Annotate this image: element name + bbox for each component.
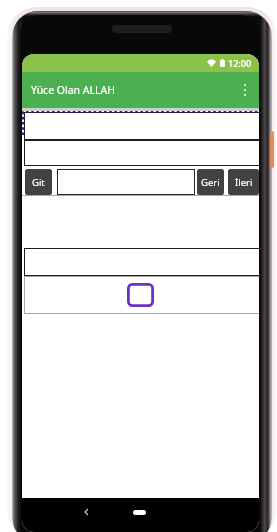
- staticText: Git: [32, 176, 45, 189]
- staticText: İleri: [235, 176, 253, 189]
- button[interactable]: [57, 169, 195, 195]
- button[interactable]: [24, 248, 259, 276]
- button[interactable]: [24, 112, 259, 140]
- button[interactable]: Back: [77, 503, 95, 521]
- staticText: Yüce Olan ALLAH: [31, 83, 116, 97]
- staticText: 12:00: [228, 57, 252, 69]
- button[interactable]: [24, 140, 259, 166]
- button[interactable]: Home: [133, 510, 146, 515]
- staticText: Geri: [201, 176, 220, 189]
- button[interactable]: Git: [25, 169, 52, 195]
- button[interactable]: İleri: [228, 169, 259, 195]
- button[interactable]: Geri: [197, 169, 224, 195]
- button[interactable]: More options: [235, 80, 255, 100]
- button[interactable]: [24, 276, 259, 314]
